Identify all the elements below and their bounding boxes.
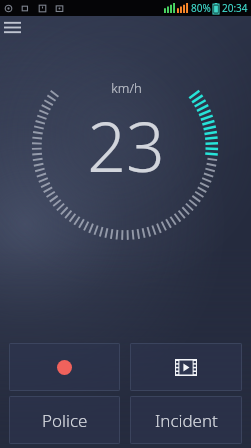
button[interactable]: Incident — [130, 396, 242, 444]
button[interactable]: Video library — [130, 343, 242, 391]
button[interactable]: Police — [9, 396, 120, 444]
staticText: Incident — [155, 409, 218, 432]
staticText: km/h — [111, 79, 142, 97]
staticText: 23 — [87, 99, 165, 192]
button[interactable]: Record — [9, 343, 120, 391]
staticText: 20:34 — [222, 1, 248, 15]
staticText: 80% — [191, 1, 211, 15]
button[interactable]: Open navigation menu — [0, 16, 24, 38]
staticText: Police — [42, 409, 88, 432]
